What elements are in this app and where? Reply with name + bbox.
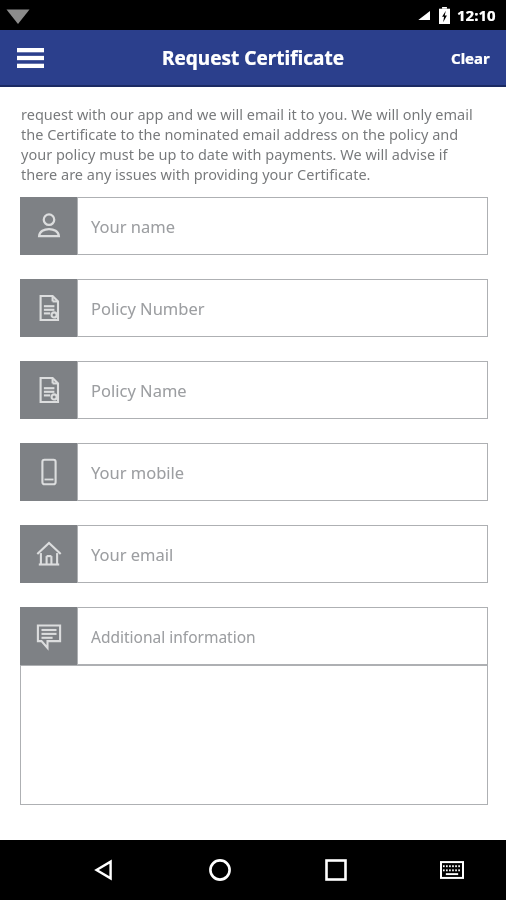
staticText: Your name bbox=[91, 215, 175, 237]
staticText: Clear bbox=[451, 48, 490, 68]
button[interactable]: Additional information field bbox=[20, 607, 488, 805]
staticText: Your email bbox=[91, 543, 174, 565]
button[interactable]: Open navigation menu bbox=[6, 34, 54, 82]
button[interactable]: Email field bbox=[20, 525, 488, 583]
staticText: Policy Name bbox=[91, 379, 187, 401]
staticText: 12:10 bbox=[457, 5, 496, 25]
staticText: request with our app and we will email i… bbox=[21, 104, 486, 184]
staticText: Policy Number bbox=[91, 297, 205, 319]
staticText: Your mobile bbox=[91, 461, 185, 483]
button[interactable]: Clear bbox=[443, 36, 498, 80]
button[interactable]: Recent apps bbox=[312, 846, 360, 894]
button[interactable]: Show keyboard bbox=[428, 846, 476, 894]
other: Wi-Fi, no internet bbox=[6, 0, 30, 30]
button[interactable]: Name field bbox=[20, 197, 488, 255]
staticText: Additional information bbox=[91, 626, 256, 647]
button[interactable]: Back bbox=[80, 846, 128, 894]
staticText: Request Certificate bbox=[162, 45, 344, 71]
button[interactable]: Policy number field bbox=[20, 279, 488, 337]
button[interactable]: Home bbox=[196, 846, 244, 894]
button[interactable]: Mobile field bbox=[20, 443, 488, 501]
button[interactable]: Policy name field bbox=[20, 361, 488, 419]
